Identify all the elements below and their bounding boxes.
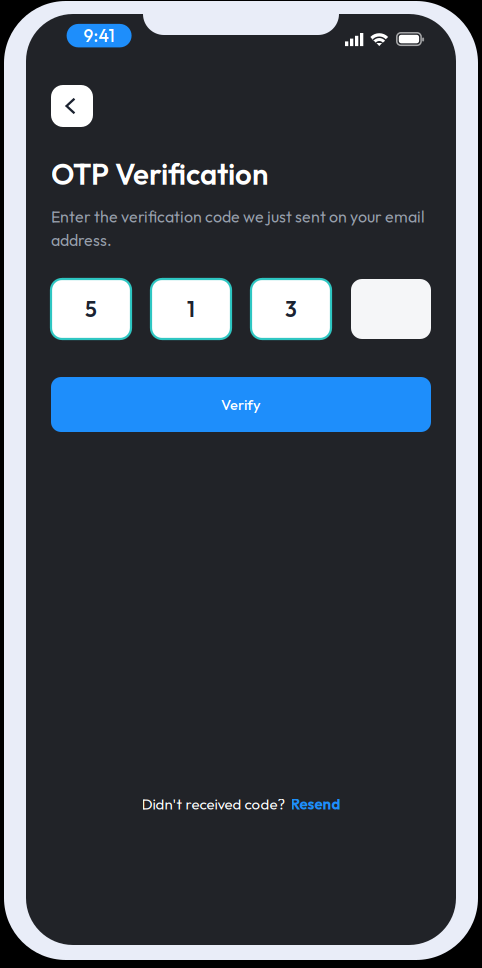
button[interactable]: Empty code digit [351, 279, 431, 339]
staticText: 5 [85, 296, 97, 322]
button[interactable]: Code digit 5 [51, 279, 131, 339]
staticText: Resend [290, 794, 340, 813]
button[interactable]: Code digit 3 [251, 279, 331, 339]
button[interactable]: Back [51, 85, 93, 127]
button[interactable]: Verify [51, 377, 431, 432]
staticText: OTP Verification [51, 155, 268, 192]
staticText: 1 [187, 296, 195, 322]
staticText: Enter the verification code we just sent… [51, 206, 425, 250]
button[interactable]: Didn't received code? [51, 791, 431, 817]
staticText: Verify [221, 395, 261, 414]
staticText: 9:41 [84, 25, 115, 46]
button[interactable]: Code digit 1 [151, 279, 231, 339]
staticText: 3 [285, 296, 297, 322]
staticText: Didn't received code? [141, 794, 285, 813]
button[interactable]: Current time 9:41 [67, 24, 132, 47]
